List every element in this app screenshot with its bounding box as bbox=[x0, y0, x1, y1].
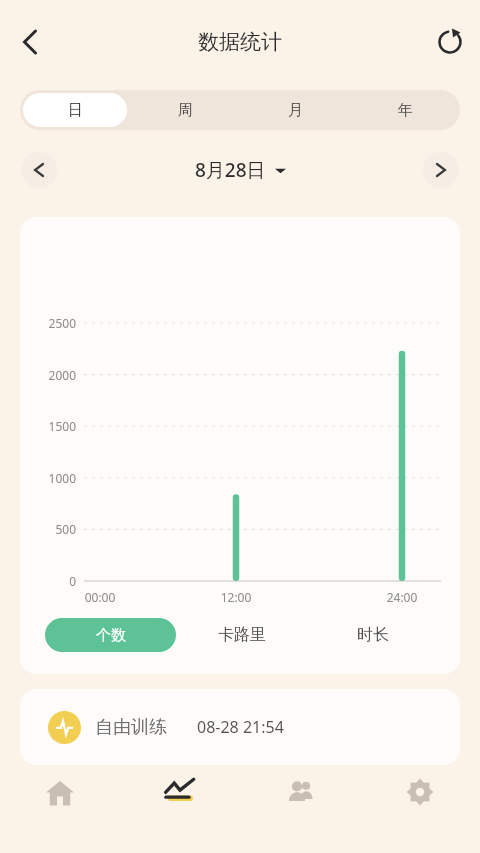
button[interactable]: Refresh bbox=[428, 20, 472, 64]
staticText: 2000 bbox=[24, 367, 76, 383]
button[interactable]: 自由训练 bbox=[20, 689, 460, 765]
staticText: 0 bbox=[24, 573, 76, 589]
staticText: 08-28 21:54 bbox=[197, 716, 284, 738]
staticText: 1500 bbox=[24, 418, 76, 434]
staticText: 周 bbox=[178, 101, 193, 120]
staticText: 时长 bbox=[357, 625, 389, 645]
staticText: 1000 bbox=[24, 470, 76, 486]
staticText: 月 bbox=[288, 101, 303, 120]
staticText: 00:00 bbox=[72, 589, 128, 605]
button[interactable]: Friends bbox=[240, 765, 360, 853]
button[interactable]: Settings bbox=[360, 765, 480, 853]
staticText: 12:00 bbox=[208, 589, 264, 605]
button[interactable]: 8月28日 bbox=[57, 152, 423, 188]
button[interactable]: 个数 bbox=[45, 618, 176, 652]
staticText: 自由训练 bbox=[95, 716, 167, 739]
staticText: 8月28日 bbox=[195, 157, 266, 183]
staticText: 数据统计 bbox=[198, 29, 282, 55]
staticText: 2500 bbox=[24, 315, 76, 331]
button[interactable]: Next day bbox=[423, 152, 459, 188]
staticText: 日 bbox=[68, 101, 83, 120]
staticText: 个数 bbox=[96, 626, 126, 645]
button[interactable]: 年 bbox=[353, 93, 457, 127]
staticText: 年 bbox=[398, 101, 413, 120]
button[interactable]: Back bbox=[6, 18, 54, 66]
staticText: 卡路里 bbox=[218, 625, 266, 645]
button[interactable]: Statistics bbox=[120, 765, 240, 853]
button[interactable]: 日 bbox=[23, 93, 127, 127]
staticText: 500 bbox=[24, 521, 76, 537]
button[interactable]: Previous day bbox=[21, 152, 57, 188]
button[interactable]: 时长 bbox=[307, 618, 438, 652]
button[interactable]: 月 bbox=[243, 93, 347, 127]
staticText: 24:00 bbox=[374, 589, 430, 605]
button[interactable]: Home bbox=[0, 765, 120, 853]
button[interactable]: 周 bbox=[133, 93, 237, 127]
button[interactable]: 卡路里 bbox=[176, 618, 307, 652]
